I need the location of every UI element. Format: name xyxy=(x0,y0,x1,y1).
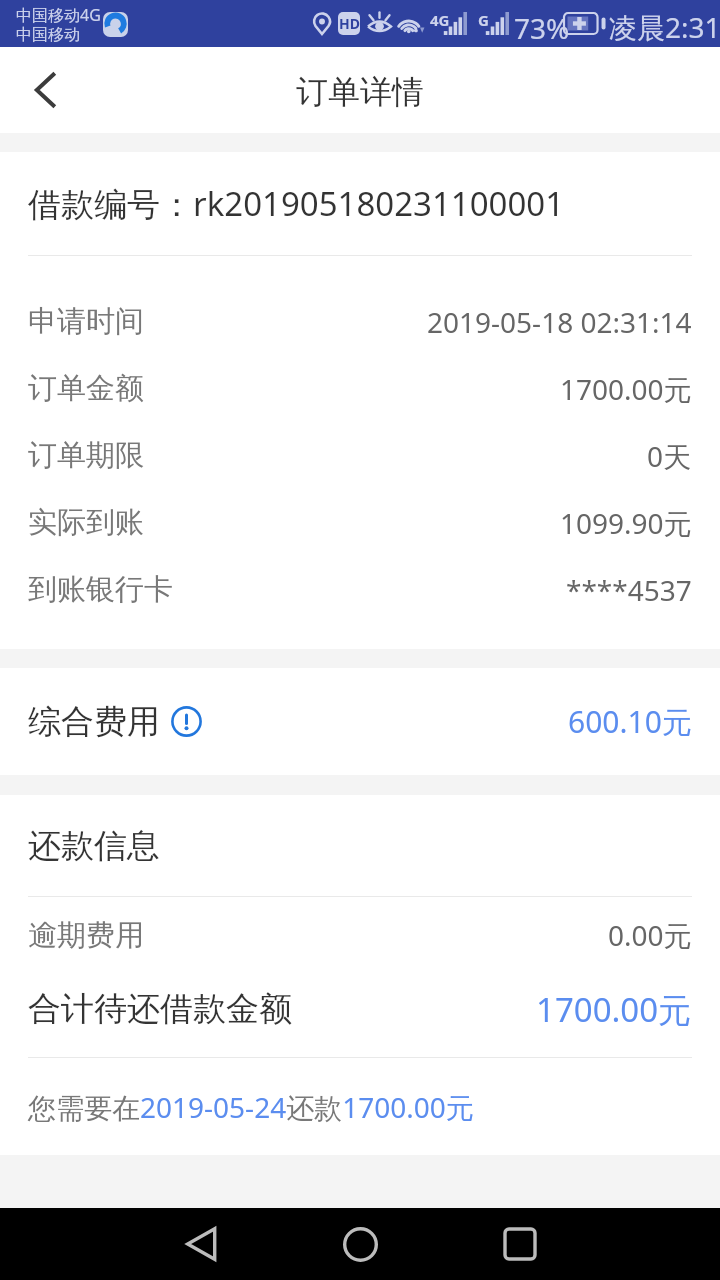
staticText: 到账银行卡 xyxy=(28,571,173,608)
button[interactable]: 综合费用 xyxy=(0,668,720,775)
button[interactable]: Recent apps xyxy=(484,1216,556,1272)
staticText: HD xyxy=(339,14,360,33)
staticText: 中国移动4G xyxy=(16,4,101,26)
staticText: 申请时间 xyxy=(28,303,144,340)
staticText: 1700.00元 xyxy=(536,987,692,1032)
staticText: 1099.90元 xyxy=(560,504,692,542)
staticText: 逾期费用 xyxy=(28,917,144,954)
staticText: 73% xyxy=(514,9,570,47)
button[interactable]: Back xyxy=(0,47,86,133)
staticText: 订单期限 xyxy=(28,437,144,474)
staticText: 实际到账 xyxy=(28,504,144,541)
staticText: G xyxy=(478,10,489,30)
staticText: 中国移动 xyxy=(16,25,80,45)
staticText: ****4537 xyxy=(566,571,692,609)
staticText: 借款编号：rk201905180231100001 xyxy=(28,181,565,226)
button[interactable]: Back xyxy=(164,1216,236,1272)
staticText: 1700.00元 xyxy=(560,370,692,408)
staticText: 合计待还借款金额 xyxy=(28,988,292,1030)
staticText: 您需要在2019-05-24还款1700.00元 xyxy=(28,1088,474,1126)
staticText: 4G xyxy=(430,10,450,30)
staticText: 还款信息 xyxy=(28,825,160,867)
staticText: 订单详情 xyxy=(296,72,424,112)
staticText: 综合费用 xyxy=(28,701,160,743)
button[interactable]: Home xyxy=(324,1216,396,1272)
staticText: 0.00元 xyxy=(608,916,692,954)
staticText: 订单金额 xyxy=(28,370,144,407)
staticText: 2019-05-18 02:31:14 xyxy=(427,303,692,341)
staticText: 0天 xyxy=(647,437,692,475)
staticText: 600.10元 xyxy=(568,701,692,742)
staticText: 凌晨2:31 xyxy=(609,8,720,46)
